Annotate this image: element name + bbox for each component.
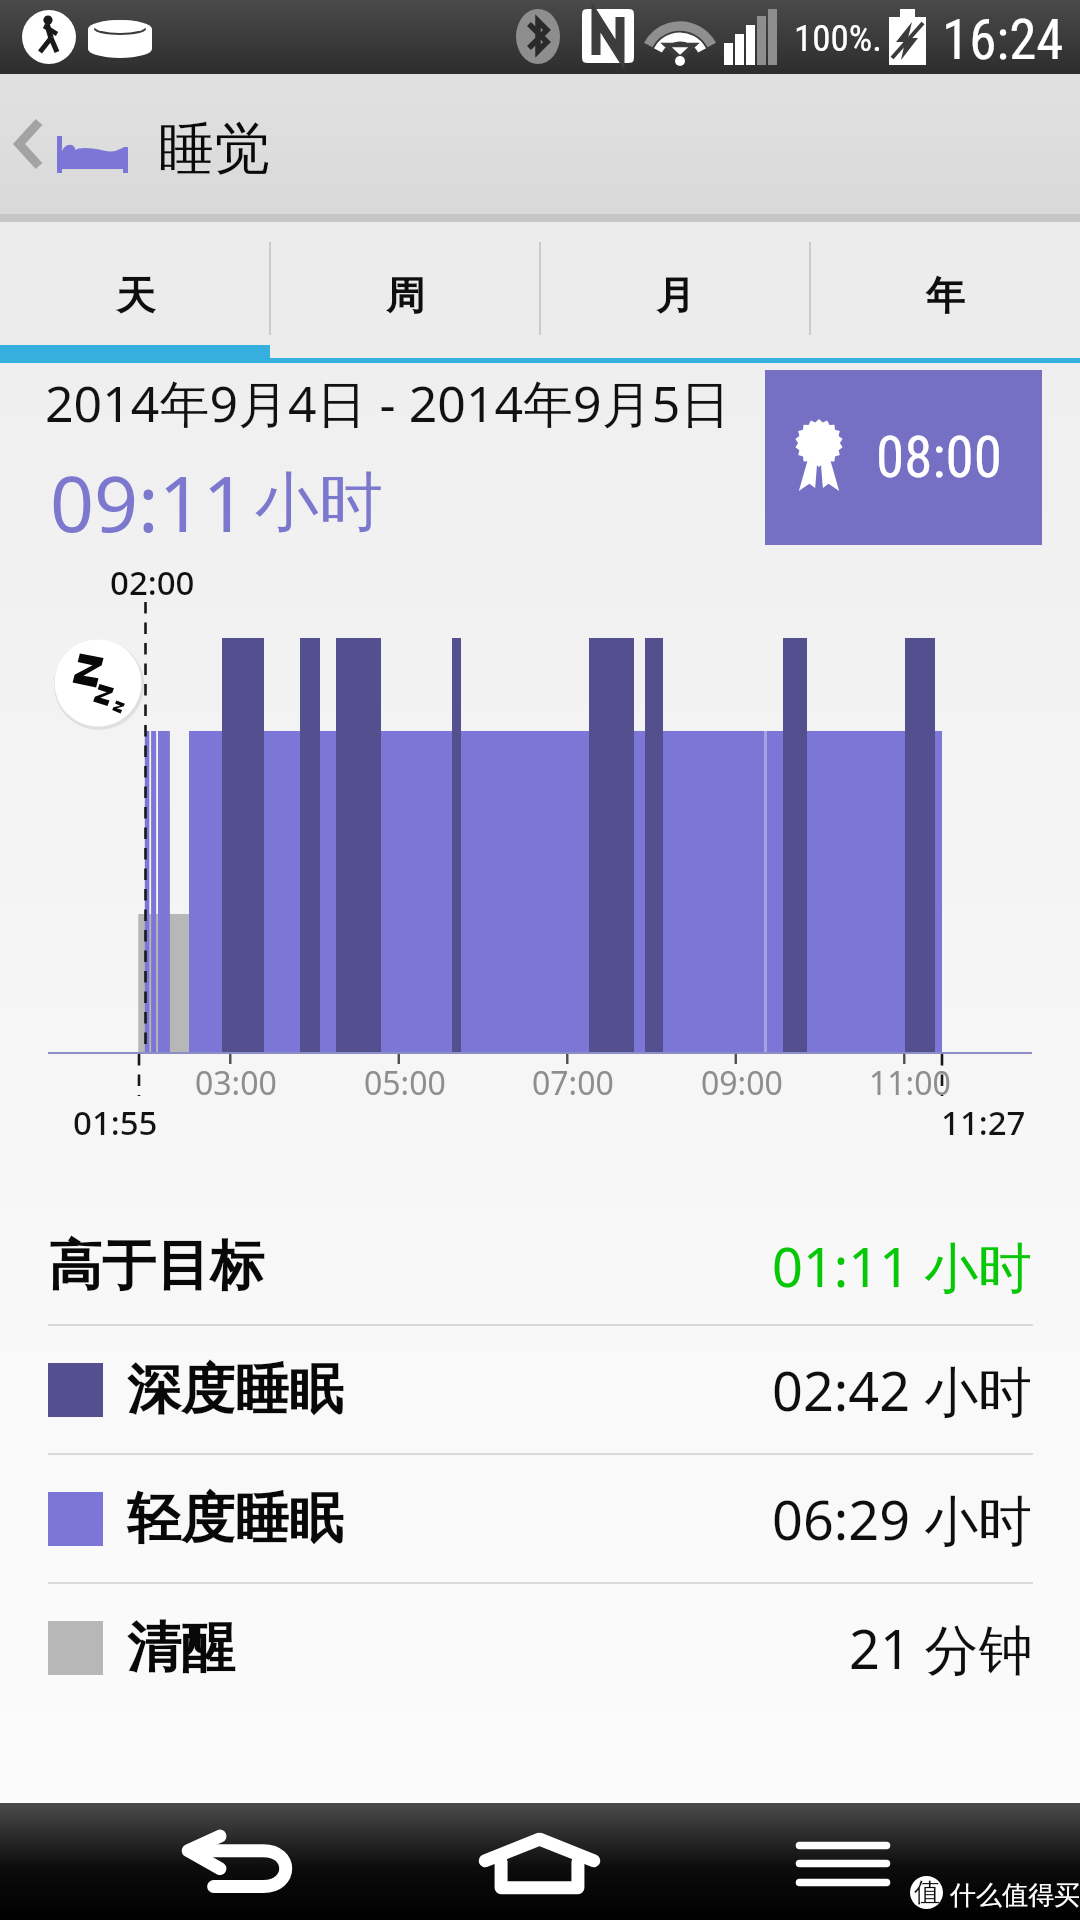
staticText: 06:29 小时 xyxy=(772,1482,1033,1556)
button[interactable]: 高于目标 xyxy=(48,1197,1033,1324)
staticText: 小时 xyxy=(255,462,383,543)
staticText: 09:11 xyxy=(50,450,247,555)
staticText: 05:00 xyxy=(364,1061,446,1105)
staticText: 轻度睡眠 xyxy=(127,1485,343,1553)
staticText: 01:55 xyxy=(73,1100,158,1145)
staticText: 03:00 xyxy=(195,1061,277,1105)
staticText: 年 xyxy=(926,271,965,320)
button[interactable]: 月 xyxy=(540,222,810,363)
button[interactable]: 清醒 xyxy=(48,1584,1033,1711)
staticText: 08:00 xyxy=(876,424,1002,491)
button[interactable]: Back xyxy=(0,94,58,194)
staticText: 09:00 xyxy=(701,1061,783,1105)
button[interactable]: 轻度睡眠 xyxy=(48,1455,1033,1582)
button[interactable]: 深度睡眠 xyxy=(48,1326,1033,1453)
button[interactable]: Recent apps xyxy=(760,1819,930,1911)
staticText: 02:42 小时 xyxy=(772,1353,1033,1427)
staticText: 周 xyxy=(386,271,425,320)
staticText: 月 xyxy=(656,271,695,320)
staticText: 睡觉 xyxy=(158,114,270,185)
staticText: 16:24 xyxy=(942,8,1064,72)
button[interactable]: 周 xyxy=(270,222,540,363)
staticText: 11:00 xyxy=(869,1061,951,1105)
staticText: 清醒 xyxy=(127,1614,235,1682)
staticText: 深度睡眠 xyxy=(127,1356,343,1424)
button[interactable]: 天 xyxy=(0,222,270,363)
staticText: 01:11 小时 xyxy=(772,1229,1033,1303)
button[interactable]: 年 xyxy=(810,222,1080,363)
staticText: 什么值得买 xyxy=(950,1879,1080,1912)
staticText: 02:00 xyxy=(110,560,195,605)
staticText: 值 xyxy=(914,1876,940,1909)
staticText: 07:00 xyxy=(532,1061,614,1105)
staticText: 11:27 xyxy=(941,1100,1026,1145)
staticText: 天 xyxy=(116,271,155,320)
button[interactable]: Home xyxy=(450,1819,630,1911)
button[interactable]: 08:00 xyxy=(765,370,1042,545)
staticText: 2014年9月4日 - 2014年9月5日 xyxy=(45,369,731,437)
staticText: 高于目标 xyxy=(48,1232,264,1300)
button[interactable]: Back xyxy=(150,1819,325,1911)
staticText: 100%. xyxy=(794,17,882,60)
staticText: 21 分钟 xyxy=(849,1611,1033,1685)
